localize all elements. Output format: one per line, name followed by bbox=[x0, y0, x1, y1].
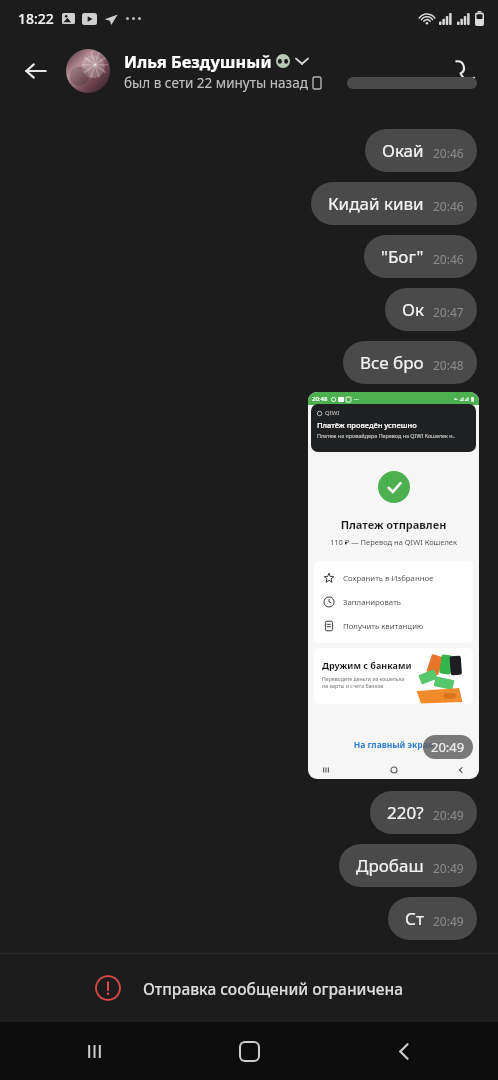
button[interactable]: QIWI bbox=[311, 404, 476, 452]
staticText: 20:46 bbox=[433, 251, 464, 267]
button[interactable]: Илья Бездушный bbox=[66, 49, 428, 93]
staticText: Платеж отправлен bbox=[308, 517, 479, 532]
staticText: Получить квитанцию bbox=[343, 621, 424, 632]
staticText: Все бро bbox=[360, 351, 424, 374]
staticText: 20:47 bbox=[433, 304, 464, 320]
button[interactable]: Home bbox=[227, 1029, 271, 1073]
staticText: Дробаш bbox=[356, 854, 424, 877]
staticText: Ст bbox=[405, 907, 424, 930]
button[interactable]: Ок bbox=[385, 288, 477, 331]
staticText: был в сети 22 минуты назад bbox=[124, 74, 308, 92]
staticText: 20:49 bbox=[431, 738, 465, 756]
staticText: 20:46 bbox=[433, 198, 464, 214]
staticText: QIWI bbox=[325, 409, 340, 417]
button[interactable]: Отправка сообщений ограничена bbox=[95, 975, 404, 1001]
button[interactable]: Call bbox=[444, 51, 484, 91]
button[interactable]: Окай bbox=[365, 129, 477, 172]
staticText: 20:49 bbox=[433, 913, 464, 929]
staticText: 20:48 bbox=[433, 357, 464, 373]
staticText: "Бог" bbox=[381, 245, 424, 268]
staticText: 220? bbox=[387, 801, 424, 824]
button[interactable]: Back bbox=[14, 49, 58, 93]
button[interactable]: Back bbox=[382, 1029, 426, 1073]
staticText: 20:48 bbox=[312, 395, 328, 403]
staticText: Отправка сообщений ограничена bbox=[143, 978, 404, 999]
staticText: 18:22 bbox=[18, 9, 54, 28]
button[interactable]: Запланировать bbox=[314, 590, 473, 614]
button[interactable]: Все бро bbox=[343, 341, 477, 384]
staticText: Ок bbox=[402, 298, 424, 321]
button[interactable] bbox=[347, 77, 477, 89]
staticText: Дружим с банками bbox=[322, 659, 412, 671]
staticText: 110 ₽ — Перевод на QIWI Кошелек bbox=[308, 537, 479, 547]
button[interactable]: Photo: QIWI payment receipt bbox=[308, 392, 479, 779]
staticText: Окай bbox=[382, 139, 424, 162]
staticText: 20:46 bbox=[433, 145, 464, 161]
staticText: 20:49 bbox=[433, 860, 464, 876]
staticText: ⌁ ⊿⊿ ▮ bbox=[454, 395, 475, 403]
button[interactable]: Дружим с банками bbox=[314, 648, 473, 704]
button[interactable]: Recent apps bbox=[72, 1029, 116, 1073]
staticText: Сохранить в Избранное bbox=[343, 573, 434, 584]
button[interactable]: Дробаш bbox=[339, 844, 477, 887]
staticText: Платеж на провайдера Перевод на QIWI Кош… bbox=[317, 432, 456, 439]
staticText: ··· bbox=[354, 395, 359, 403]
button[interactable]: На главный экран bbox=[308, 739, 479, 751]
staticText: Запланировать bbox=[343, 597, 402, 608]
button[interactable]: Получить квитанцию bbox=[314, 614, 473, 638]
staticText: Кидай киви bbox=[328, 192, 424, 215]
button[interactable]: "Бог" bbox=[364, 235, 477, 278]
staticText: Платёж проведён успешно bbox=[317, 420, 417, 430]
button[interactable]: Сохранить в Избранное bbox=[314, 566, 473, 590]
button[interactable]: 220? bbox=[370, 791, 477, 834]
staticText: Илья Бездушный bbox=[124, 50, 272, 72]
staticText: 20:49 bbox=[433, 807, 464, 823]
staticText: Переводите деньги из кошелька на карты и… bbox=[322, 675, 405, 689]
button[interactable]: Ст bbox=[388, 897, 477, 940]
button[interactable]: Кидай киви bbox=[311, 182, 477, 225]
